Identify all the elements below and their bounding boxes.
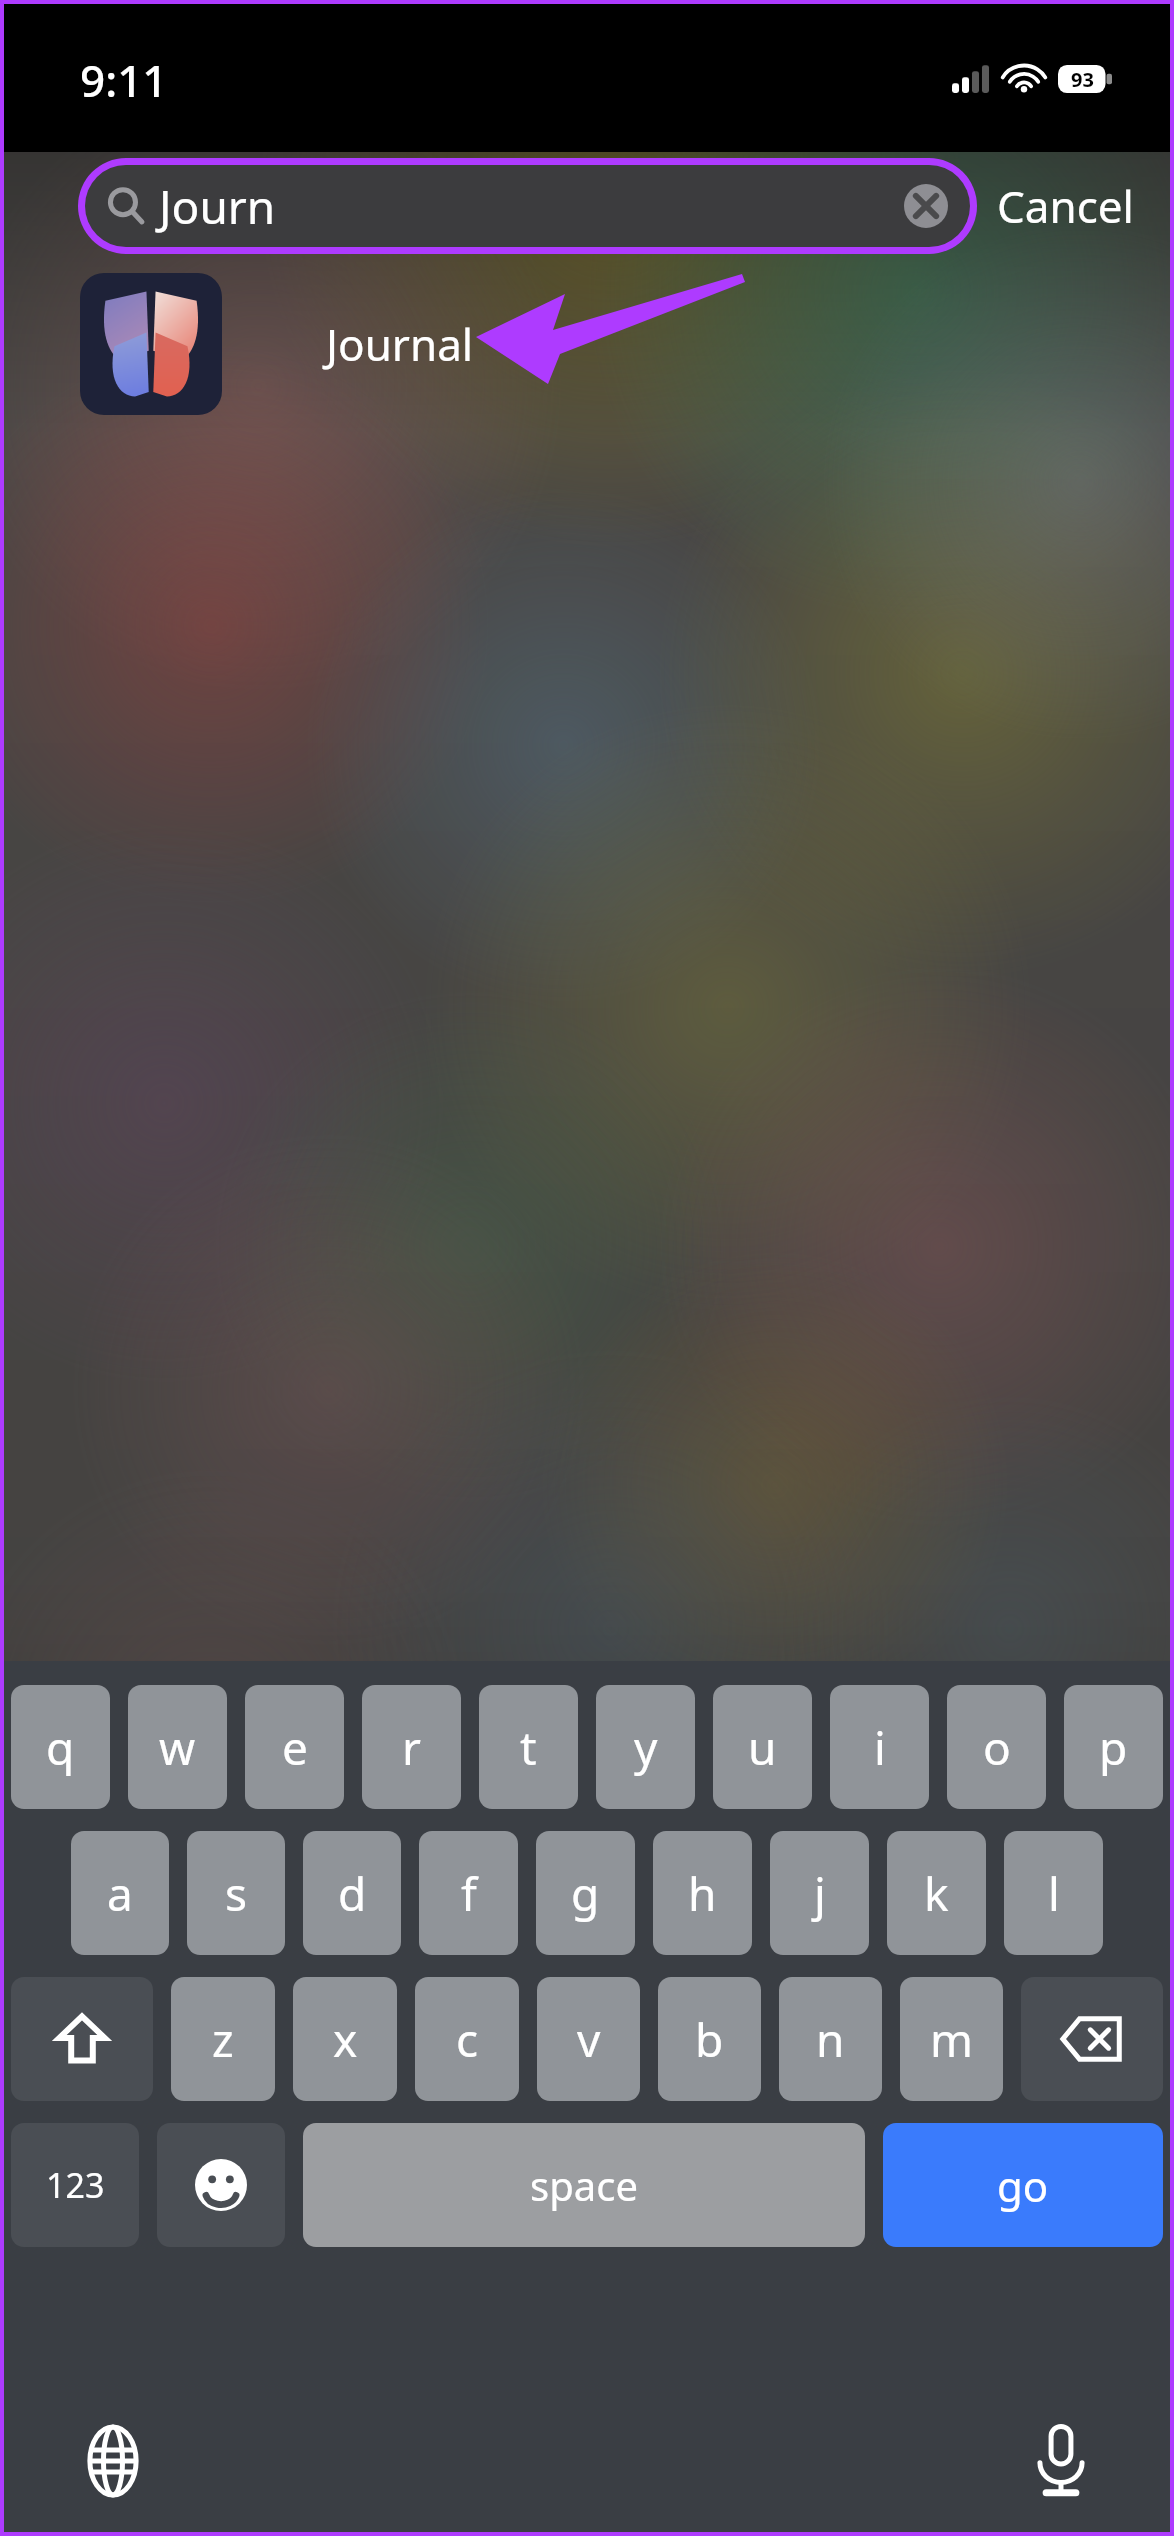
staticText: z <box>212 2008 234 2071</box>
button[interactable]: y <box>596 1685 695 1809</box>
staticText: b <box>695 2008 724 2071</box>
staticText: c <box>456 2008 479 2071</box>
button[interactable]: v <box>537 1977 640 2101</box>
staticText: l <box>1048 1862 1060 1925</box>
staticText: o <box>983 1716 1011 1779</box>
staticText: 9:11 <box>80 50 168 110</box>
button[interactable]: f <box>419 1831 518 1955</box>
staticText: y <box>634 1716 658 1779</box>
button[interactable]: m <box>900 1977 1003 2101</box>
staticText: g <box>571 1862 600 1925</box>
staticText: Journ <box>159 175 276 238</box>
button[interactable]: Dictation <box>1016 2416 1106 2506</box>
button[interactable]: s <box>187 1831 285 1955</box>
staticText: e <box>282 1716 308 1779</box>
button[interactable]: d <box>303 1831 401 1955</box>
button[interactable]: space <box>303 2123 865 2247</box>
staticText: 93 <box>1071 66 1094 93</box>
staticText: t <box>520 1716 537 1779</box>
staticText: k <box>924 1862 949 1925</box>
button[interactable]: c <box>415 1977 519 2101</box>
staticText: v <box>577 2008 601 2071</box>
button[interactable]: t <box>479 1685 578 1809</box>
staticText: i <box>874 1716 886 1779</box>
button[interactable]: q <box>11 1685 110 1809</box>
staticText: a <box>107 1862 133 1925</box>
button[interactable]: Shift <box>11 1977 153 2101</box>
staticText: s <box>225 1862 248 1925</box>
staticText: f <box>461 1862 477 1925</box>
button[interactable]: Journ <box>85 165 970 247</box>
button[interactable]: e <box>245 1685 344 1809</box>
staticText: m <box>930 2008 974 2071</box>
button[interactable]: i <box>830 1685 929 1809</box>
button[interactable]: k <box>887 1831 986 1955</box>
staticText: w <box>159 1716 196 1779</box>
staticText: p <box>1099 1716 1128 1779</box>
button[interactable]: Cancel <box>997 176 1134 236</box>
button[interactable]: a <box>71 1831 169 1955</box>
button[interactable]: Journal <box>80 254 1174 434</box>
staticText: h <box>688 1862 717 1925</box>
button[interactable]: go <box>883 2123 1163 2247</box>
staticText: x <box>333 2008 358 2071</box>
button[interactable]: g <box>536 1831 635 1955</box>
staticText: j <box>814 1862 826 1925</box>
button[interactable]: w <box>128 1685 227 1809</box>
button[interactable]: r <box>362 1685 461 1809</box>
staticText: n <box>816 2008 845 2071</box>
staticText: r <box>402 1716 421 1779</box>
staticText: d <box>338 1862 367 1925</box>
staticText: Cancel <box>997 176 1134 236</box>
button[interactable]: u <box>713 1685 812 1809</box>
button[interactable]: Switch keyboard language <box>68 2416 158 2506</box>
staticText: q <box>46 1716 75 1779</box>
button[interactable]: 123 <box>11 2123 139 2247</box>
button[interactable]: z <box>171 1977 275 2101</box>
staticText: go <box>997 2157 1049 2214</box>
button[interactable]: x <box>293 1977 397 2101</box>
button[interactable]: b <box>658 1977 761 2101</box>
button[interactable]: n <box>779 1977 882 2101</box>
button[interactable]: o <box>947 1685 1046 1809</box>
button[interactable]: l <box>1004 1831 1103 1955</box>
button[interactable]: Emoji <box>157 2123 285 2247</box>
staticText: 123 <box>46 2162 105 2208</box>
button[interactable]: j <box>770 1831 869 1955</box>
staticText: space <box>530 2158 638 2212</box>
button[interactable]: p <box>1064 1685 1163 1809</box>
staticText: Journal <box>326 314 474 374</box>
staticText: u <box>748 1716 777 1779</box>
button[interactable]: h <box>653 1831 752 1955</box>
button[interactable]: Backspace <box>1021 1977 1163 2101</box>
button[interactable]: Clear text <box>904 184 948 228</box>
